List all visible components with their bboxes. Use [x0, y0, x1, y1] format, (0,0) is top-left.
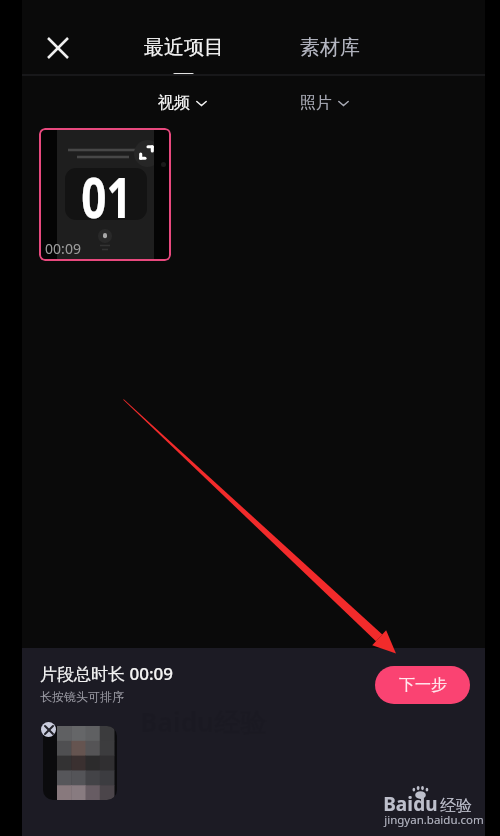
- staticText: 00:09: [45, 239, 81, 258]
- button[interactable]: 01: [39, 128, 171, 261]
- staticText: 素材库: [300, 35, 360, 60]
- button[interactable]: 最近项目: [136, 25, 232, 69]
- staticText: 照片: [300, 93, 332, 113]
- staticText: 经验: [440, 796, 472, 816]
- button[interactable]: Close: [34, 24, 82, 72]
- staticText: 最近项目: [144, 35, 224, 60]
- staticText: 片段总时长 00:09: [40, 662, 173, 685]
- staticText: Bai: [383, 791, 413, 817]
- staticText: du: [413, 791, 438, 817]
- staticText: jingyan.baidu.com: [384, 812, 484, 828]
- staticText: 长按镜头可排序: [40, 689, 124, 704]
- button[interactable]: 视频: [152, 88, 213, 118]
- staticText: 01: [81, 159, 132, 221]
- button[interactable]: 素材库: [290, 25, 370, 69]
- button[interactable]: Remove clip: [41, 722, 56, 737]
- button[interactable]: 下一步: [375, 666, 470, 704]
- button[interactable]: [43, 726, 117, 800]
- staticText: 下一步: [399, 675, 447, 695]
- staticText: 视频: [158, 93, 190, 113]
- button[interactable]: 照片: [294, 88, 355, 118]
